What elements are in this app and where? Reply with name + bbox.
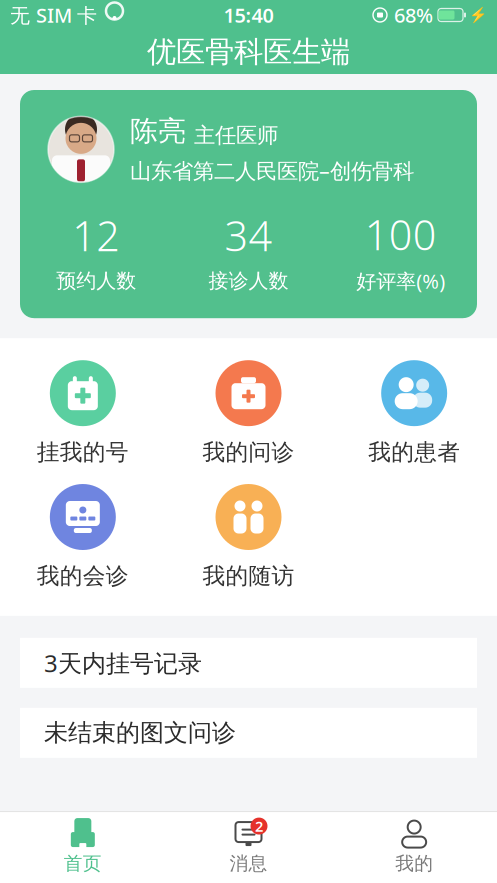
staticText: 未结束的图文问诊 <box>44 718 236 748</box>
button[interactable]: 首页 <box>0 820 166 875</box>
staticText: 主任医师 <box>194 122 278 148</box>
staticText: 消息 <box>229 852 267 875</box>
staticText: 挂我的号 <box>37 438 129 466</box>
staticText: 好评率(%) <box>356 268 445 294</box>
staticText: 预约人数 <box>56 269 136 293</box>
button[interactable]: 未结束的图文问诊 <box>20 708 477 758</box>
staticText: 100 <box>365 207 437 262</box>
staticText: 15:40 <box>223 2 273 28</box>
staticText: ⚡ <box>469 7 487 23</box>
staticText: 陈亮 <box>130 114 186 148</box>
staticText: 我的问诊 <box>202 438 294 466</box>
staticText: 我的会诊 <box>37 562 129 590</box>
staticText: 首页 <box>64 852 102 875</box>
staticText: 12 <box>72 208 120 263</box>
staticText: 优医骨科医生端 <box>147 34 350 70</box>
staticText: 山东省第二人民医院–创伤骨科 <box>130 156 414 185</box>
button[interactable]: 2 <box>166 820 331 875</box>
button[interactable]: 我的 <box>331 820 497 875</box>
button[interactable]: 我的患者 <box>331 360 497 466</box>
button[interactable]: 我的会诊 <box>0 484 166 590</box>
staticText: 34 <box>224 208 272 263</box>
staticText: 我的随访 <box>202 562 294 590</box>
staticText: 我的 <box>395 852 433 875</box>
staticText: 3天内挂号记录 <box>44 647 202 679</box>
staticText: 接诊人数 <box>208 269 288 293</box>
staticText: 无 SIM 卡 <box>10 2 97 28</box>
staticText: 68% <box>394 2 433 28</box>
button[interactable]: 挂我的号 <box>0 360 166 466</box>
button[interactable]: 我的随访 <box>166 484 331 590</box>
staticText: 2 <box>255 816 263 836</box>
staticText: 我的患者 <box>368 438 460 466</box>
button[interactable]: 3天内挂号记录 <box>20 638 477 688</box>
button[interactable]: 我的问诊 <box>166 360 331 466</box>
